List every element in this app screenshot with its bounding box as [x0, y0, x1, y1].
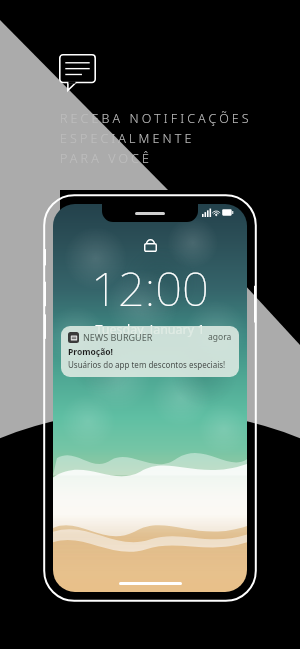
staticText: RECEBA NOTIFICAÇÕES: [60, 110, 252, 127]
button[interactable]: NEWS BURGUER: [61, 326, 239, 377]
staticText: Tuesday, January 1: [95, 321, 205, 338]
staticText: 12:00: [91, 256, 209, 320]
staticText: Promoção!: [68, 346, 114, 358]
staticText: Usuários do app tem descontos especiais!: [68, 359, 226, 370]
staticText: NEWS BURGUER: [83, 331, 153, 343]
staticText: PARA VOCÊ: [60, 150, 153, 167]
staticText: agora: [208, 331, 232, 343]
staticText: ESPECIALMENTE: [60, 130, 195, 147]
button[interactable]: Notifications: [59, 54, 96, 92]
